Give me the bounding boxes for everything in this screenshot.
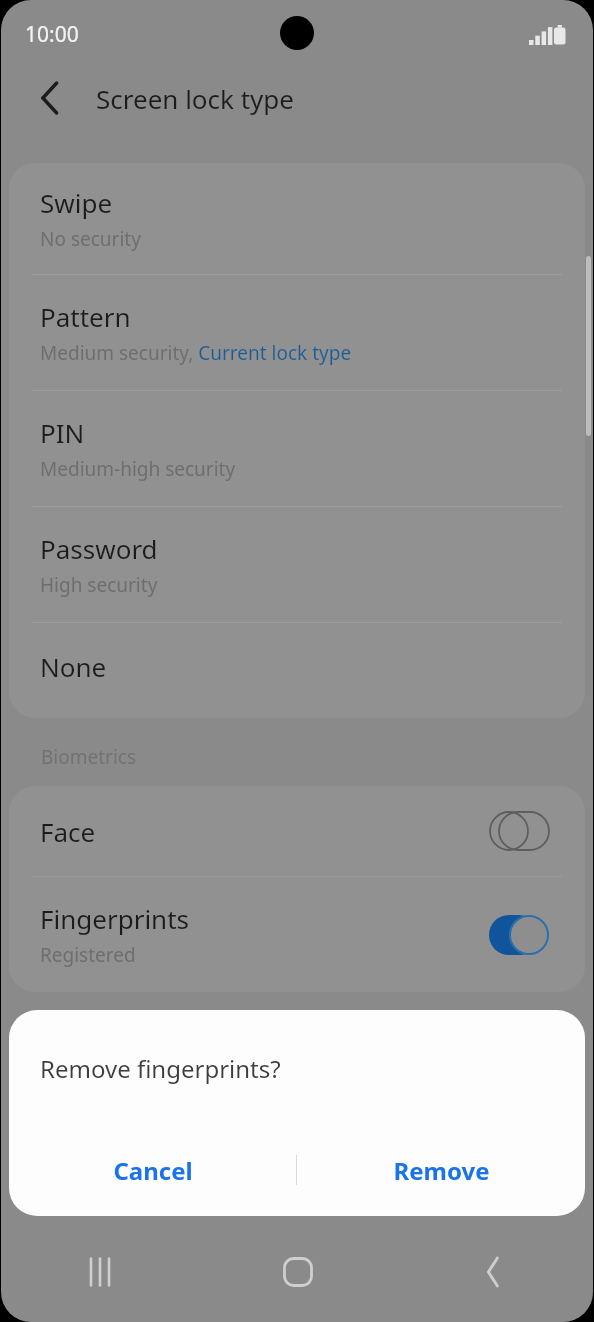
staticText: Biometrics: [41, 744, 137, 770]
staticText: Face: [40, 814, 96, 849]
staticText: Password: [40, 531, 158, 566]
staticText: Medium-high security: [40, 456, 236, 482]
staticText: Pattern: [40, 299, 131, 334]
staticText: Remove fingerprints?: [40, 1052, 281, 1085]
button[interactable]: On: [488, 914, 550, 956]
staticText: PIN: [40, 415, 85, 450]
button[interactable]: None: [9, 623, 585, 718]
staticText: Swipe: [40, 185, 113, 220]
button[interactable]: Recent apps: [1, 1222, 199, 1322]
button[interactable]: Cancel: [9, 1137, 296, 1203]
staticText: No security: [40, 226, 141, 252]
button[interactable]: Navigate up: [27, 74, 75, 122]
button[interactable]: Back: [396, 1222, 593, 1322]
staticText: 10:00: [25, 20, 79, 49]
button[interactable]: Pattern: [9, 275, 585, 390]
button[interactable]: Off: [488, 810, 550, 852]
staticText: None: [40, 649, 107, 684]
staticText: High security: [40, 572, 158, 598]
button[interactable]: Remove: [297, 1137, 585, 1203]
button[interactable]: Fingerprints: [9, 877, 585, 992]
button[interactable]: PIN: [9, 391, 585, 506]
button[interactable]: Password: [9, 507, 585, 622]
button[interactable]: Face: [9, 786, 585, 876]
staticText: Remove: [393, 1154, 490, 1187]
staticText: Cancel: [113, 1154, 193, 1187]
staticText: Screen lock type: [96, 81, 294, 116]
button[interactable]: Swipe: [9, 163, 585, 274]
staticText: Fingerprints: [40, 901, 190, 936]
button[interactable]: Home: [199, 1222, 396, 1322]
staticText: Medium security, Current lock type: [40, 340, 352, 366]
staticText: Registered: [40, 942, 136, 968]
